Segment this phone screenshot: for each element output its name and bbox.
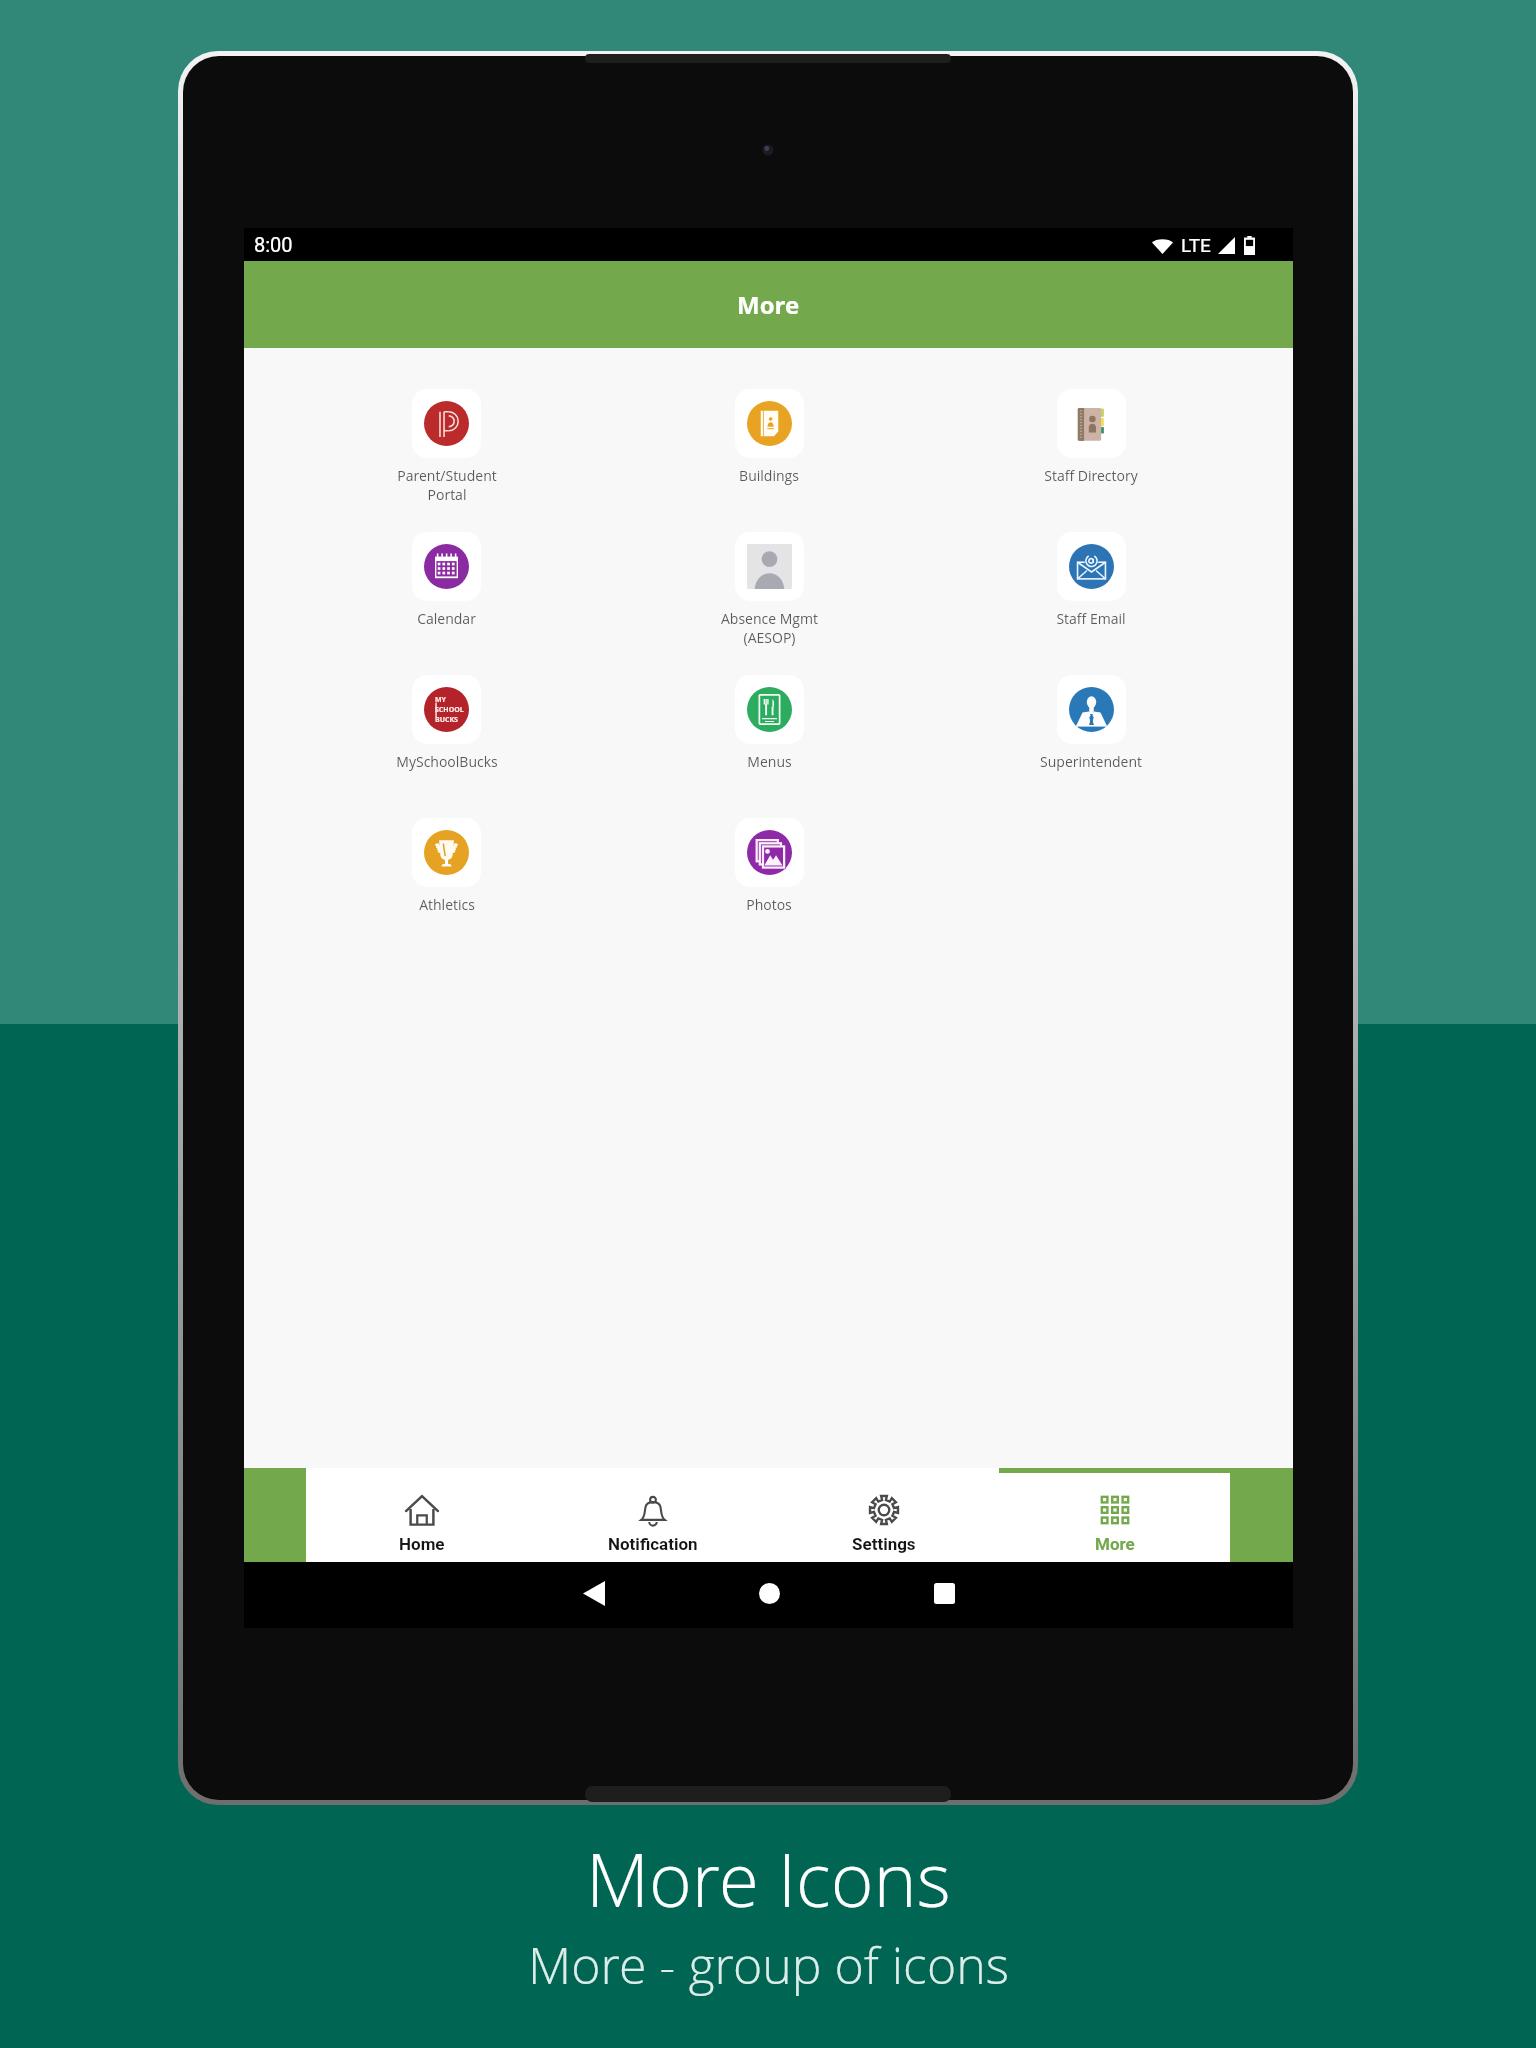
staticText: Photos <box>746 895 792 914</box>
staticText: Staff Email <box>1056 609 1126 628</box>
staticText: More <box>1095 1534 1135 1554</box>
staticText: MY <box>435 695 446 705</box>
button[interactable]: Settings <box>768 1468 999 1562</box>
button[interactable]: Home <box>306 1468 537 1562</box>
staticText: Parent/Student Portal <box>397 466 497 504</box>
button[interactable]: Athletics <box>285 818 608 914</box>
button[interactable]: Back <box>573 1572 615 1614</box>
button[interactable]: Recents <box>923 1572 965 1614</box>
staticText: More Icons <box>586 1829 951 1928</box>
button[interactable]: Notification <box>537 1468 768 1562</box>
staticText: LTE <box>1181 234 1211 256</box>
staticText: Superintendent <box>1040 752 1142 771</box>
button[interactable]: MY <box>285 675 608 771</box>
staticText: MySchoolBucks <box>396 752 498 771</box>
staticText: Absence Mgmt (AESOP) <box>721 609 818 647</box>
button[interactable]: More <box>999 1468 1230 1562</box>
button[interactable]: Menus <box>608 675 930 771</box>
staticText: Athletics <box>419 895 475 914</box>
button[interactable]: Absence Mgmt (AESOP) <box>608 532 930 647</box>
staticText: Home <box>399 1534 445 1554</box>
button[interactable]: Photos <box>608 818 930 914</box>
staticText: SCHOOL <box>435 705 464 715</box>
staticText: Calendar <box>417 609 476 628</box>
button[interactable]: Superintendent <box>930 675 1252 771</box>
staticText: Settings <box>852 1534 916 1554</box>
staticText: Menus <box>747 752 792 771</box>
staticText: Staff Directory <box>1044 466 1138 485</box>
staticText: BUCKS <box>435 715 458 725</box>
staticText: Notification <box>608 1534 698 1554</box>
staticText: More <box>737 288 800 321</box>
button[interactable]: Calendar <box>285 532 608 628</box>
button[interactable]: Parent/Student Portal <box>285 389 608 504</box>
button[interactable]: Staff Directory <box>930 389 1252 485</box>
staticText: More - group of icons <box>528 1931 1009 1999</box>
staticText: 8:00 <box>254 233 293 256</box>
button[interactable]: Staff Email <box>930 532 1252 628</box>
button[interactable]: Home <box>748 1572 790 1614</box>
staticText: Buildings <box>739 466 799 485</box>
button[interactable]: Buildings <box>608 389 930 485</box>
